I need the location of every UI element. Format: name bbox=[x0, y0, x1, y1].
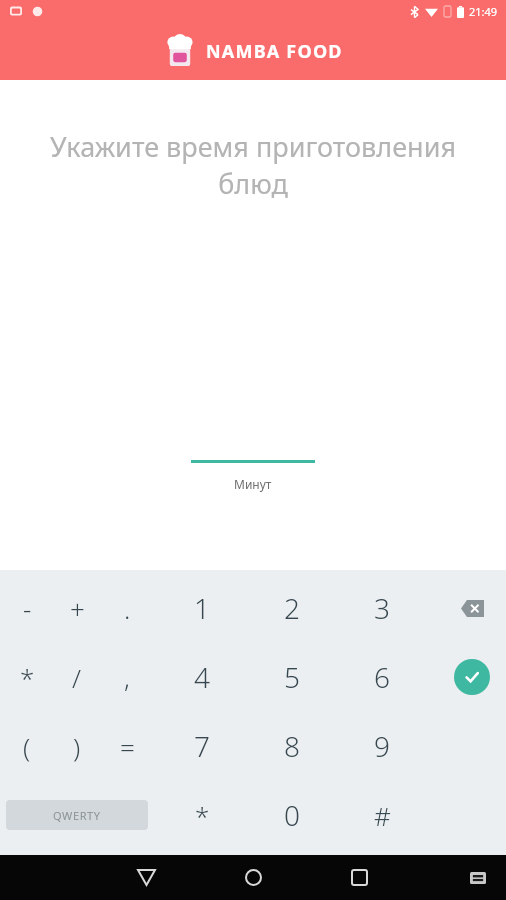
button[interactable]: # bbox=[352, 785, 412, 845]
button[interactable]: Confirm bbox=[442, 647, 502, 707]
staticText: 1 bbox=[194, 589, 210, 627]
staticText: 21:49 bbox=[469, 4, 498, 19]
staticText: 4 bbox=[194, 658, 210, 696]
button[interactable]: 5 bbox=[262, 647, 322, 707]
staticText: = bbox=[120, 729, 135, 764]
button[interactable]: ( bbox=[0, 716, 57, 776]
staticText: NAMBA FOOD bbox=[206, 39, 343, 64]
button[interactable]: Keyboard bbox=[464, 864, 492, 892]
button[interactable]: - bbox=[0, 578, 57, 638]
staticText: + bbox=[70, 591, 85, 626]
staticText: Укажите время приготовления блюд bbox=[18, 128, 488, 202]
staticText: QWERTY bbox=[53, 808, 101, 823]
button[interactable]: / bbox=[47, 647, 107, 707]
button[interactable]: * bbox=[172, 785, 232, 845]
button[interactable]: * bbox=[0, 647, 57, 707]
staticText: 8 bbox=[284, 727, 300, 765]
staticText: * bbox=[195, 798, 210, 833]
button[interactable]: 7 bbox=[172, 716, 232, 776]
staticText: ( bbox=[23, 729, 31, 764]
button[interactable]: . bbox=[97, 578, 157, 638]
staticText: . bbox=[124, 591, 131, 626]
button[interactable]: 4 bbox=[172, 647, 232, 707]
button[interactable]: , bbox=[97, 647, 157, 707]
button[interactable]: ) bbox=[47, 716, 107, 776]
button[interactable]: 0 bbox=[262, 785, 322, 845]
staticText: 6 bbox=[374, 658, 390, 696]
staticText: 7 bbox=[194, 727, 210, 765]
button[interactable]: Backspace bbox=[442, 578, 502, 638]
button[interactable]: Home bbox=[233, 855, 273, 900]
button[interactable]: 6 bbox=[352, 647, 412, 707]
button[interactable]: 8 bbox=[262, 716, 322, 776]
staticText: , bbox=[124, 660, 130, 695]
button[interactable]: QWERTY bbox=[6, 800, 148, 830]
button[interactable]: = bbox=[97, 716, 157, 776]
button[interactable]: 9 bbox=[352, 716, 412, 776]
staticText: / bbox=[72, 660, 82, 695]
staticText: 5 bbox=[284, 658, 300, 696]
button[interactable]: Минут bbox=[191, 460, 315, 492]
button[interactable]: 3 bbox=[352, 578, 412, 638]
staticText: - bbox=[23, 591, 32, 626]
staticText: Минут bbox=[234, 476, 272, 492]
staticText: 3 bbox=[374, 589, 390, 627]
staticText: 2 bbox=[284, 589, 300, 627]
button[interactable]: Recents bbox=[339, 855, 379, 900]
button[interactable]: 1 bbox=[172, 578, 232, 638]
staticText: ) bbox=[73, 729, 81, 764]
button[interactable]: 2 bbox=[262, 578, 322, 638]
staticText: 9 bbox=[374, 727, 390, 765]
button[interactable]: Back bbox=[126, 855, 166, 900]
button[interactable]: + bbox=[47, 578, 107, 638]
staticText: * bbox=[20, 660, 35, 695]
staticText: 0 bbox=[284, 796, 300, 834]
staticText: # bbox=[374, 798, 391, 833]
